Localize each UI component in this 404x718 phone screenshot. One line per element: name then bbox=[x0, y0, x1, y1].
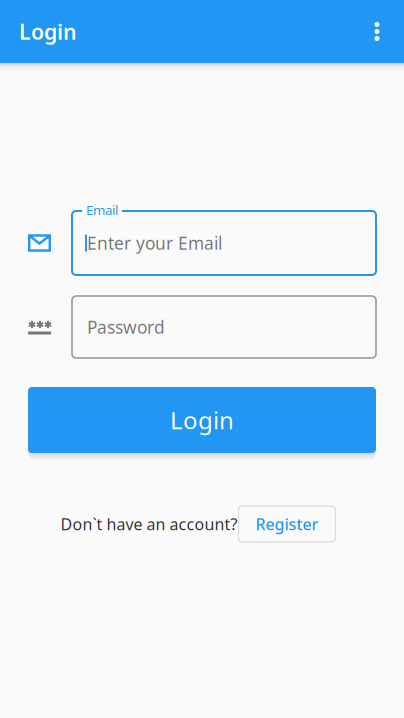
button[interactable]: Login bbox=[28, 387, 376, 453]
staticText: Password bbox=[87, 315, 165, 338]
staticText: Don`t have an account? bbox=[60, 513, 237, 535]
staticText: Email bbox=[86, 201, 118, 219]
staticText: Login bbox=[170, 404, 234, 436]
button[interactable]: Register bbox=[238, 506, 335, 542]
button[interactable]: More options bbox=[360, 0, 394, 64]
staticText: Register bbox=[255, 513, 318, 535]
staticText: Enter your Email bbox=[87, 231, 222, 254]
staticText: Login bbox=[19, 17, 77, 46]
